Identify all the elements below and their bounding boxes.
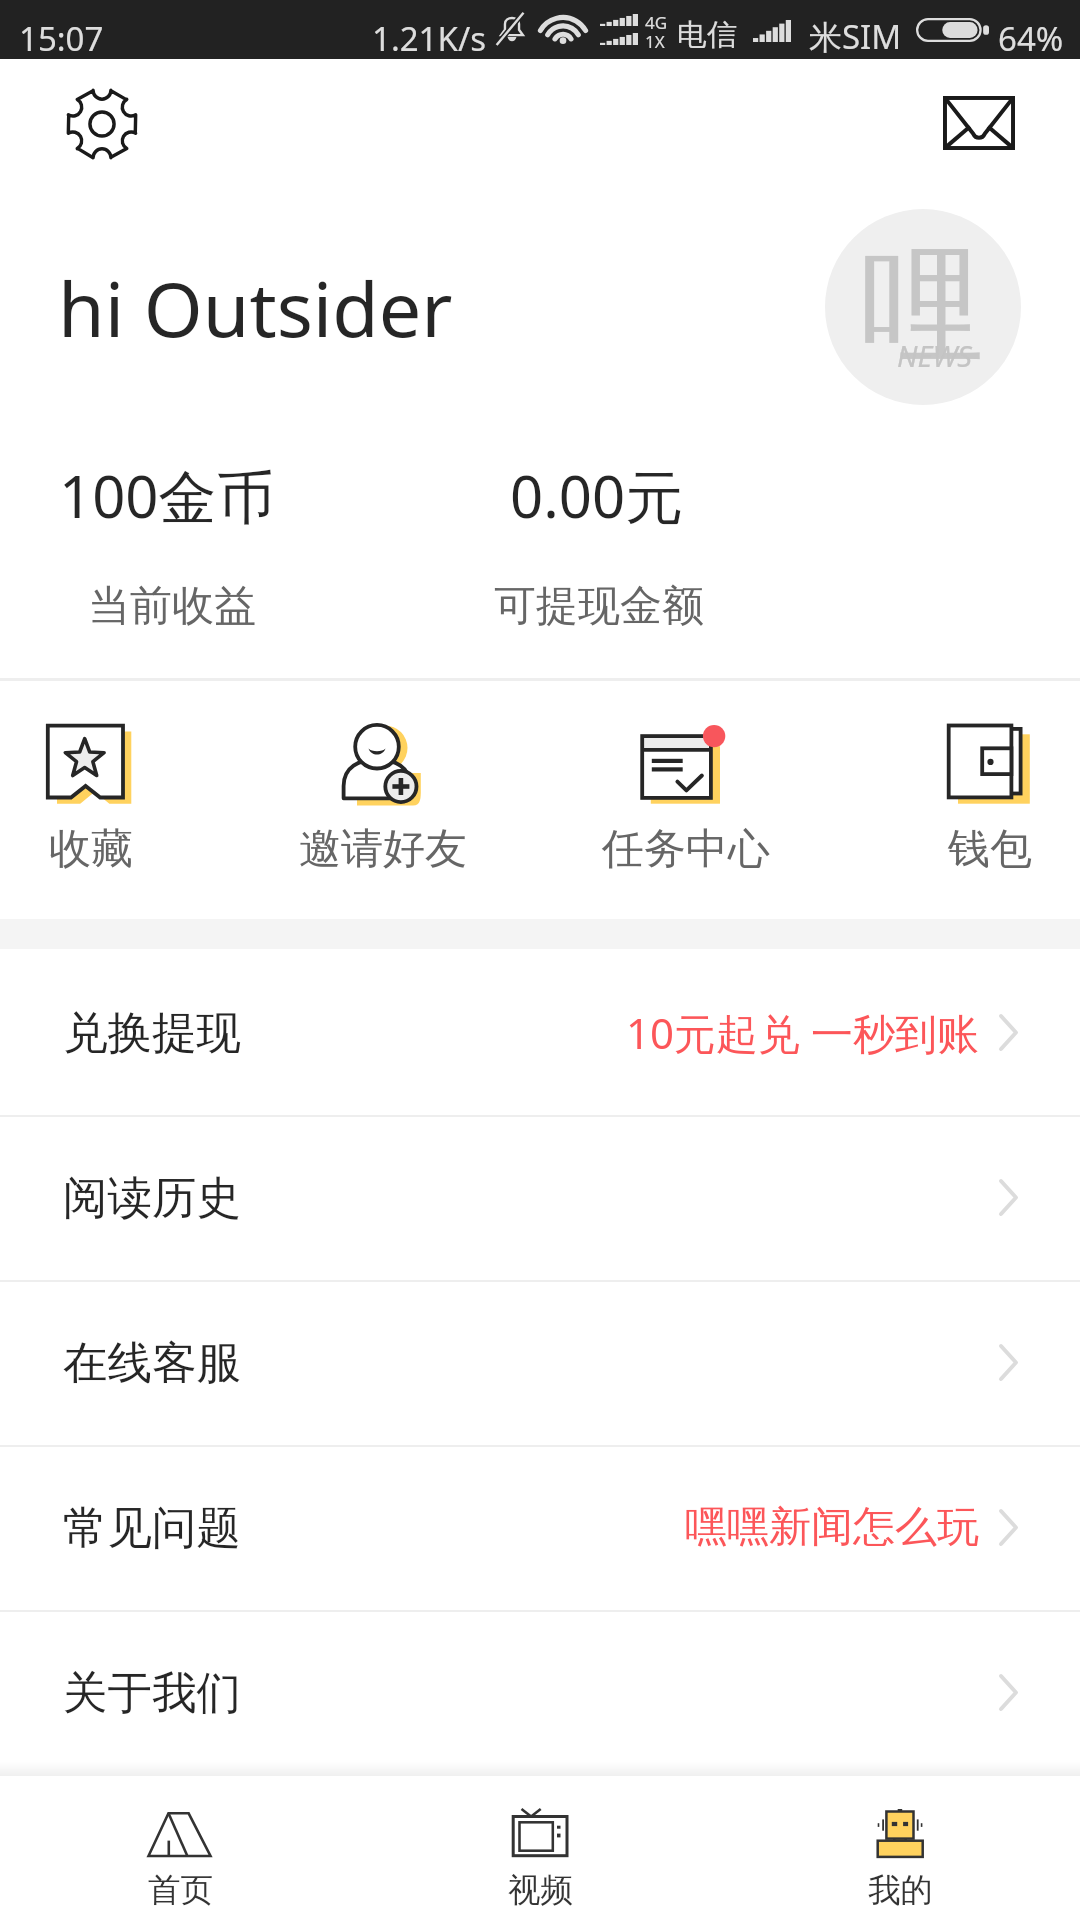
staticText: 首页 <box>148 1870 213 1911</box>
staticText: 关于我们 <box>63 1665 241 1721</box>
staticText: 视频 <box>508 1870 573 1911</box>
button[interactable]: 兑换提现 <box>0 950 1080 1115</box>
button[interactable]: 首页 <box>0 1776 360 1920</box>
button[interactable]: 在线客服 <box>0 1280 1080 1445</box>
staticText: 在线客服 <box>63 1335 241 1391</box>
staticText: 0.00元 <box>510 456 684 535</box>
staticText: 钱包 <box>948 823 1032 876</box>
staticText: 收藏 <box>49 823 133 876</box>
button[interactable]: 视频 <box>360 1776 720 1920</box>
staticText: hi Outsider <box>58 256 453 359</box>
staticText: 15:07 <box>19 16 104 61</box>
button[interactable]: 邀请好友 <box>273 700 493 900</box>
staticText: 任务中心 <box>602 823 770 876</box>
staticText: 100金币 <box>59 456 275 535</box>
staticText: 常见问题 <box>63 1500 241 1556</box>
staticText: 阅读历史 <box>63 1170 241 1226</box>
staticText: 兑换提现 <box>63 1005 241 1061</box>
staticText: 哩 <box>860 229 984 385</box>
staticText: 4G <box>645 11 668 34</box>
button[interactable]: 我的 <box>720 1776 1080 1920</box>
button[interactable]: Messages <box>928 80 1028 165</box>
staticText: 64% <box>998 16 1064 61</box>
staticText: 10元起兑 一秒到账 <box>626 1004 979 1061</box>
button[interactable]: Settings <box>52 74 152 174</box>
button[interactable]: Profile avatar <box>825 209 1021 405</box>
button[interactable]: 收藏 <box>0 700 201 900</box>
button[interactable]: 钱包 <box>880 700 1080 900</box>
staticText: 我的 <box>868 1870 933 1911</box>
staticText: 电信 <box>677 16 737 54</box>
staticText: 邀请好友 <box>299 823 467 876</box>
staticText: 当前收益 <box>88 580 256 633</box>
staticText: 可提现金额 <box>494 580 704 633</box>
staticText: 嘿嘿新闻怎么玩 <box>685 1501 979 1554</box>
button[interactable]: 任务中心 <box>576 700 796 900</box>
button[interactable]: 阅读历史 <box>0 1115 1080 1280</box>
staticText: 米SIM <box>809 14 902 59</box>
staticText: 1.21K/s <box>372 16 486 61</box>
button[interactable]: 关于我们 <box>0 1610 1080 1775</box>
staticText: NEWS <box>897 336 972 375</box>
button[interactable]: 常见问题 <box>0 1445 1080 1610</box>
staticText: 1X <box>645 30 665 53</box>
